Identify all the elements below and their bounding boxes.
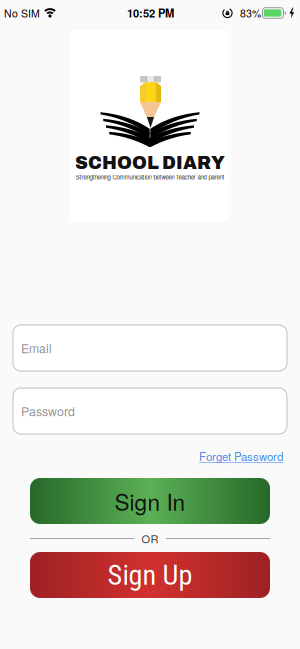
staticText: Email: [21, 339, 52, 357]
staticText: 10:52 PM: [127, 5, 174, 21]
staticText: Strengthening Communication between teac…: [75, 173, 224, 181]
staticText: SCHOOL DIARY: [75, 153, 225, 173]
staticText: Sign Up: [107, 558, 192, 591]
staticText: 83%: [240, 5, 261, 21]
staticText: Password: [21, 402, 75, 420]
staticText: OR: [141, 531, 158, 546]
button[interactable]: Sign In: [30, 478, 270, 524]
staticText: No SIM: [4, 5, 40, 21]
button[interactable]: Password: [13, 388, 287, 434]
button[interactable]: Email: [13, 325, 287, 371]
staticText: Forget Password: [199, 448, 283, 464]
button[interactable]: Sign Up: [30, 552, 270, 598]
staticText: Sign In: [114, 485, 185, 517]
button[interactable]: Forget Password: [199, 448, 283, 464]
